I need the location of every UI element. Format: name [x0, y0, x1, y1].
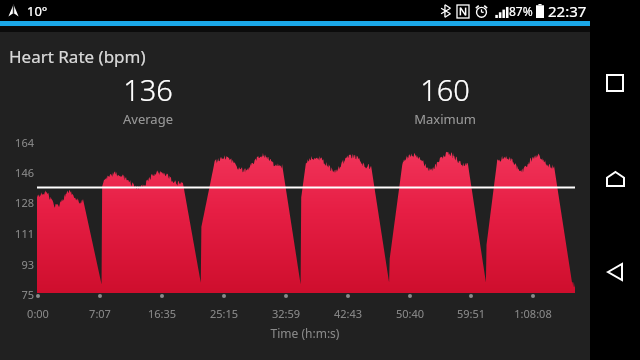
staticText: 160	[420, 70, 470, 109]
staticText: 32:59	[256, 306, 316, 321]
staticText: 0:00	[8, 306, 68, 321]
staticText: 164	[8, 135, 34, 150]
staticText: 136	[123, 70, 173, 109]
staticText: 22:37	[548, 1, 587, 21]
staticText: 42:43	[318, 306, 378, 321]
staticText: 111	[8, 226, 34, 241]
button[interactable]: Back	[602, 259, 628, 285]
staticText: Heart Rate (bpm)	[9, 45, 146, 68]
staticText: 87%	[509, 3, 533, 19]
staticText: 146	[8, 165, 34, 180]
staticText: 16:35	[132, 306, 192, 321]
staticText: 128	[8, 195, 34, 210]
staticText: 93	[8, 257, 34, 272]
button[interactable]: 160	[385, 70, 505, 128]
staticText: Average	[123, 110, 173, 128]
staticText: 1:08:08	[503, 306, 563, 321]
staticText: Time (h:m:s)	[245, 325, 365, 341]
staticText: 59:51	[441, 306, 501, 321]
staticText: Maximum	[414, 110, 476, 128]
button[interactable]: 136	[88, 70, 208, 128]
button[interactable]: Recents	[602, 70, 628, 96]
staticText: 7:07	[70, 306, 130, 321]
button[interactable]	[37, 136, 575, 293]
staticText: 25:15	[194, 306, 254, 321]
staticText: 10°	[27, 2, 48, 20]
button[interactable]: Home	[602, 166, 628, 192]
staticText: 75	[8, 287, 34, 302]
staticText: 50:40	[380, 306, 440, 321]
